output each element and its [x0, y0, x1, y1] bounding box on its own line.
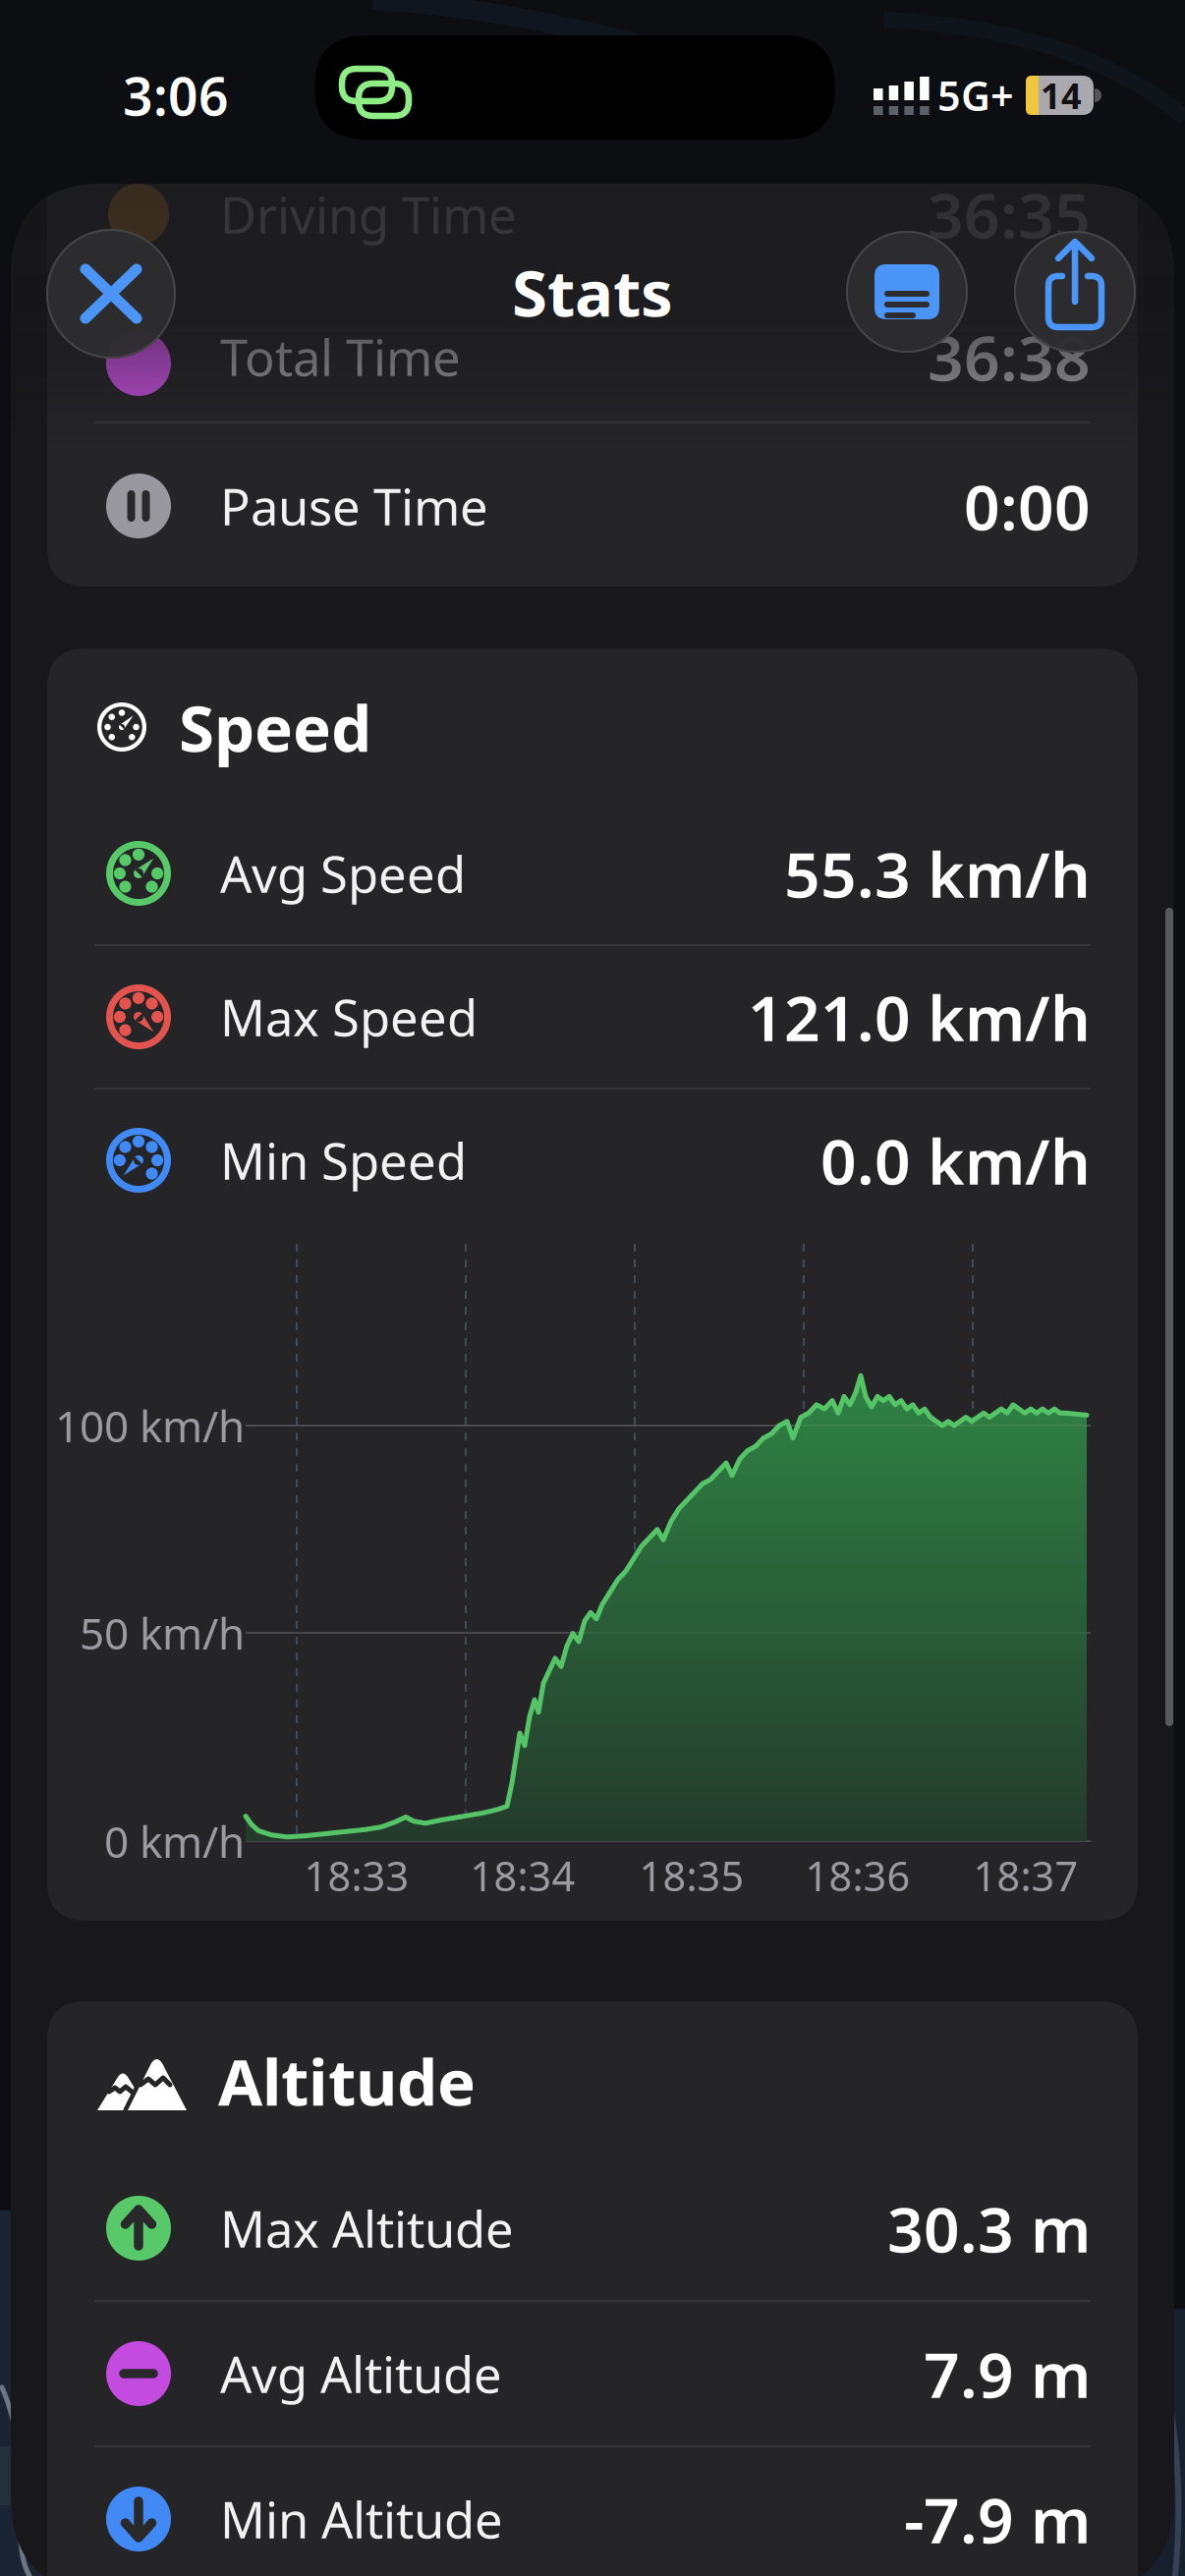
staticText: 7.9 m [924, 2332, 1091, 2415]
staticText: 0:00 [964, 464, 1091, 548]
staticText: Total Time [220, 324, 461, 390]
staticText: Driving Time [220, 181, 517, 247]
staticText: Avg Altitude [220, 2341, 502, 2407]
staticText: Min Altitude [220, 2486, 503, 2552]
staticText: 30.3 m [887, 2186, 1091, 2270]
staticText: 36:38 [928, 315, 1091, 398]
staticText: Altitude [218, 2038, 476, 2123]
staticText: 18:35 [639, 1849, 744, 1903]
staticText: 50 km/h [80, 1604, 245, 1662]
staticText: 36:35 [928, 172, 1091, 256]
staticText: Pause Time [220, 473, 488, 539]
staticText: Max Altitude [220, 2195, 514, 2261]
staticText: -7.9 m [904, 2477, 1091, 2561]
staticText: 18:33 [304, 1849, 409, 1903]
staticText: 18:37 [973, 1849, 1078, 1903]
staticText: 14 [1041, 72, 1082, 119]
staticText: 100 km/h [55, 1397, 245, 1454]
staticText: Max Speed [220, 984, 478, 1050]
staticText: Avg Speed [220, 840, 466, 907]
staticText: Speed [179, 684, 371, 770]
button[interactable]: Share [1014, 231, 1136, 353]
staticText: 55.3 km/h [784, 832, 1091, 915]
staticText: 18:36 [805, 1849, 910, 1903]
staticText: 121.0 km/h [748, 975, 1091, 1059]
staticText: Stats [512, 249, 673, 334]
staticText: 5G+ [937, 68, 1014, 122]
button[interactable]: Notes [846, 231, 968, 353]
staticText: 0.0 km/h [820, 1119, 1091, 1202]
staticText: 18:34 [470, 1849, 575, 1903]
staticText: 0 km/h [104, 1812, 245, 1870]
button[interactable]: Close [46, 229, 176, 359]
staticText: Min Speed [220, 1127, 467, 1193]
staticText: 3:06 [123, 61, 229, 130]
